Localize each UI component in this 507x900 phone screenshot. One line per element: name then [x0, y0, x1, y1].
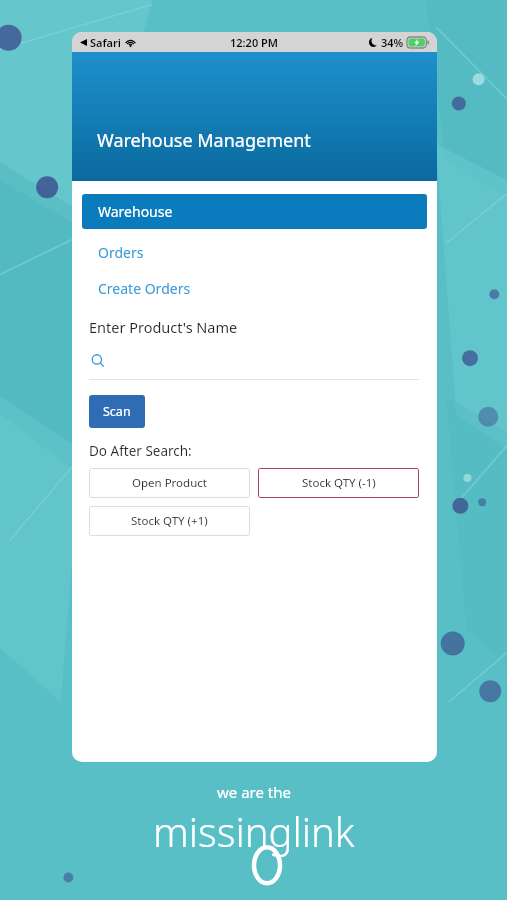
button[interactable]: Warehouse: [82, 194, 427, 229]
staticText: Enter Product's Name: [89, 317, 238, 337]
staticText: Safari: [90, 35, 121, 50]
staticText: 12:20 PM: [230, 35, 279, 50]
staticText: we are the: [217, 782, 291, 802]
button[interactable]: Orders: [82, 239, 427, 265]
staticText: Scan: [103, 403, 131, 420]
button[interactable]: Stock QTY (-1): [258, 468, 419, 498]
staticText: missinglink: [153, 804, 355, 858]
staticText: Stock QTY (-1): [302, 475, 376, 491]
button[interactable]: Stock QTY (+1): [89, 506, 250, 536]
staticText: Warehouse: [98, 202, 173, 221]
staticText: 34%: [381, 35, 404, 50]
staticText: Create Orders: [98, 279, 191, 298]
button[interactable]: Scan: [89, 395, 145, 428]
staticText: Orders: [98, 243, 144, 262]
staticText: Warehouse Management: [97, 128, 311, 153]
button[interactable]: Open Product: [89, 468, 250, 498]
button[interactable]: Search: [89, 353, 419, 380]
button[interactable]: Create Orders: [82, 275, 427, 301]
staticText: Stock QTY (+1): [131, 513, 208, 529]
other: Search: [91, 353, 105, 369]
staticText: Open Product: [132, 475, 207, 491]
staticText: Do After Search:: [89, 442, 192, 460]
